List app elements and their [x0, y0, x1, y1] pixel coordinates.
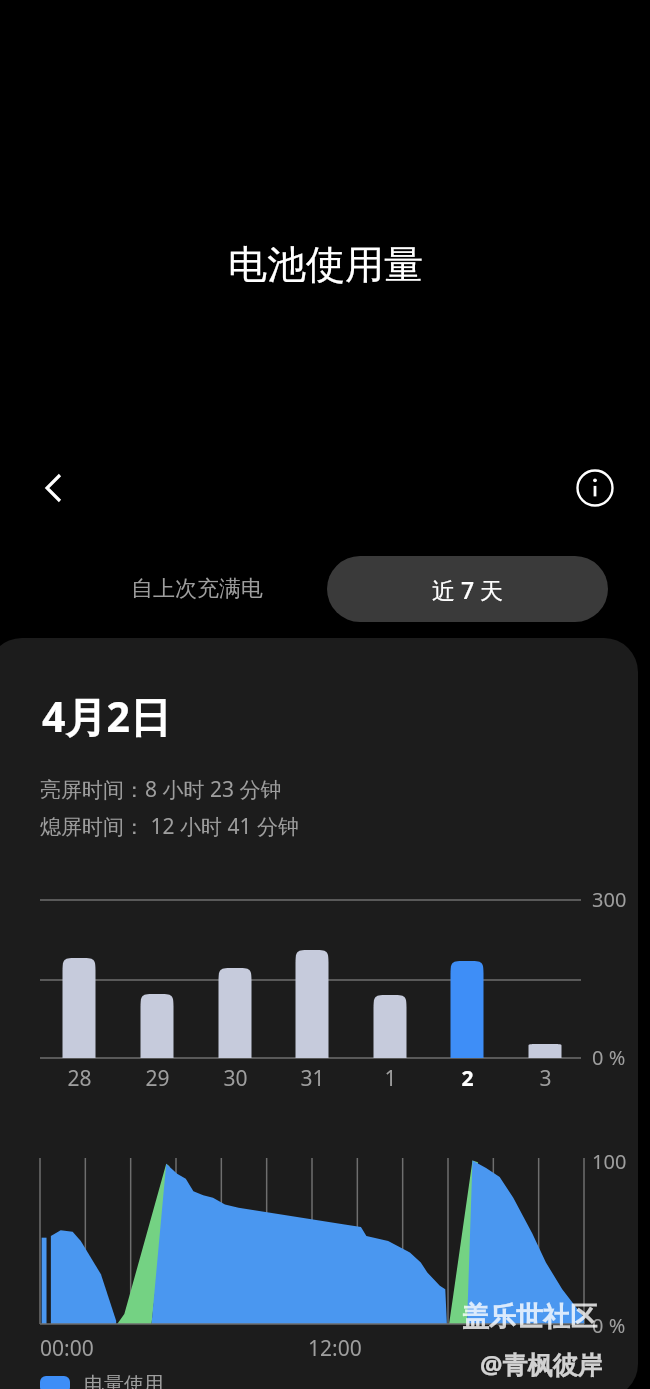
staticText: 电量使用	[84, 1372, 164, 1389]
staticText: 12:00	[308, 1334, 362, 1363]
staticText: 300	[592, 886, 627, 913]
staticText: 0 %	[592, 1044, 626, 1071]
staticText: 熄屏时间： 12 小时 41 分钟	[40, 812, 299, 841]
staticText: 00:00	[40, 1334, 94, 1363]
staticText: 3	[539, 1064, 552, 1093]
staticText: 30	[223, 1064, 248, 1093]
button[interactable]: 自上次充满电	[72, 556, 322, 622]
staticText: 自上次充满电	[131, 575, 263, 603]
staticText: 电池使用量	[228, 240, 423, 289]
staticText: 4月2日	[42, 688, 171, 744]
staticText: 29	[145, 1064, 170, 1093]
staticText: 1	[384, 1064, 397, 1093]
staticText: 2	[461, 1064, 474, 1093]
staticText: 100	[592, 1148, 627, 1175]
staticText: 28	[67, 1064, 92, 1093]
staticText: 盖乐世社区	[462, 1300, 597, 1334]
staticText: 0 %	[592, 1312, 626, 1339]
staticText: @青枫彼岸	[480, 1347, 603, 1381]
staticText: 31	[300, 1064, 325, 1093]
button[interactable]: Information	[567, 460, 623, 516]
button[interactable]: Back	[26, 460, 82, 516]
staticText: 近 7 天	[432, 574, 504, 605]
staticText: 亮屏时间：8 小时 23 分钟	[40, 775, 282, 804]
button[interactable]: 近 7 天	[327, 556, 608, 622]
